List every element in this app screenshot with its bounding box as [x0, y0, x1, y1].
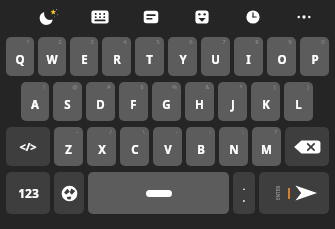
staticText: H — [195, 97, 204, 113]
staticText: 6 — [189, 38, 193, 46]
button[interactable]: Space — [88, 172, 229, 214]
staticText: ; — [242, 128, 244, 136]
staticText: ( — [274, 83, 276, 91]
button[interactable]: J — [218, 82, 247, 121]
staticText: 0 — [321, 38, 325, 46]
staticText: ~ — [75, 128, 79, 136]
staticText: R — [113, 52, 121, 68]
staticText: M — [261, 142, 272, 158]
button[interactable]: W — [38, 37, 66, 76]
staticText: K — [262, 97, 270, 113]
button[interactable]: U — [201, 37, 230, 76]
staticText: X — [98, 142, 106, 158]
button[interactable]: P — [300, 37, 329, 76]
staticText: # — [107, 83, 111, 91]
button[interactable]: Clipboard — [125, 0, 176, 34]
staticText: , — [243, 194, 245, 204]
button[interactable]: . — [233, 172, 255, 214]
staticText: - — [176, 128, 178, 136]
staticText: O — [277, 52, 287, 68]
button[interactable]: I — [234, 37, 263, 76]
staticText: T — [146, 52, 153, 68]
staticText: 5 — [156, 38, 160, 46]
staticText: \ — [142, 128, 145, 136]
staticText: F — [130, 97, 137, 113]
staticText: P — [311, 52, 319, 68]
staticText: 7 — [222, 38, 226, 46]
button[interactable]: Y — [168, 37, 197, 76]
button[interactable]: G — [152, 82, 181, 121]
staticText: </> — [19, 139, 37, 154]
staticText: ! — [43, 83, 45, 91]
staticText: 4 — [123, 38, 127, 46]
staticText: * — [239, 83, 243, 91]
button[interactable]: N — [219, 127, 248, 166]
staticText: 9 — [288, 38, 292, 46]
staticText: 3 — [90, 38, 94, 46]
button[interactable]: L — [284, 82, 313, 121]
staticText: B — [197, 142, 205, 158]
button[interactable]: S — [53, 82, 82, 121]
staticText: & — [205, 83, 210, 91]
button[interactable]: H — [185, 82, 214, 121]
button[interactable]: Night mode — [22, 0, 74, 34]
staticText: V — [164, 142, 172, 158]
button[interactable]: E — [70, 37, 98, 76]
staticText: W — [46, 52, 58, 68]
staticText: ? — [274, 128, 277, 136]
staticText: N — [229, 142, 239, 158]
button[interactable]: D — [86, 82, 115, 121]
button[interactable]: M — [252, 127, 281, 166]
staticText: C — [131, 142, 139, 158]
staticText: S — [64, 97, 71, 113]
staticText: Y — [179, 52, 187, 68]
staticText: D — [96, 97, 105, 113]
staticText: @ — [72, 83, 78, 91]
button[interactable]: Keyboard — [74, 0, 125, 34]
staticText: U — [211, 52, 220, 68]
staticText: ) — [307, 83, 309, 91]
button[interactable]: Z — [54, 127, 83, 166]
staticText: / — [109, 128, 112, 136]
staticText: : — [209, 128, 211, 136]
button[interactable]: Change language — [54, 172, 84, 214]
button[interactable]: Recent — [227, 0, 278, 34]
staticText: ENTER — [274, 185, 280, 200]
staticText: L — [295, 97, 302, 113]
staticText: 2 — [58, 38, 62, 46]
staticText: A — [31, 97, 39, 113]
staticText: Z — [65, 142, 72, 158]
staticText: . — [243, 183, 245, 193]
staticText: 1 — [26, 38, 30, 46]
staticText: J — [231, 97, 235, 113]
staticText: % — [172, 83, 177, 91]
button[interactable]: Q — [6, 37, 34, 76]
button[interactable]: More — [278, 0, 329, 34]
staticText: I — [246, 52, 251, 68]
button[interactable]: C — [120, 127, 149, 166]
button[interactable]: R — [102, 37, 131, 76]
button[interactable]: O — [267, 37, 296, 76]
button[interactable]: X — [87, 127, 116, 166]
staticText: 123 — [18, 185, 39, 201]
button[interactable]: Send — [259, 172, 329, 214]
button[interactable]: V — [153, 127, 182, 166]
staticText: 8 — [255, 38, 259, 46]
button[interactable]: Symbols — [6, 127, 50, 166]
button[interactable]: B — [186, 127, 215, 166]
button[interactable]: 123 — [6, 172, 50, 214]
staticText: E — [81, 52, 88, 68]
button[interactable]: Emoji — [176, 0, 227, 34]
button[interactable]: T — [135, 37, 164, 76]
button[interactable]: A — [21, 82, 49, 121]
button[interactable]: K — [251, 82, 280, 121]
button[interactable]: F — [119, 82, 148, 121]
staticText: Q — [15, 52, 25, 68]
staticText: G — [162, 97, 171, 113]
staticText: $ — [140, 83, 144, 91]
button[interactable]: Backspace — [285, 127, 329, 166]
